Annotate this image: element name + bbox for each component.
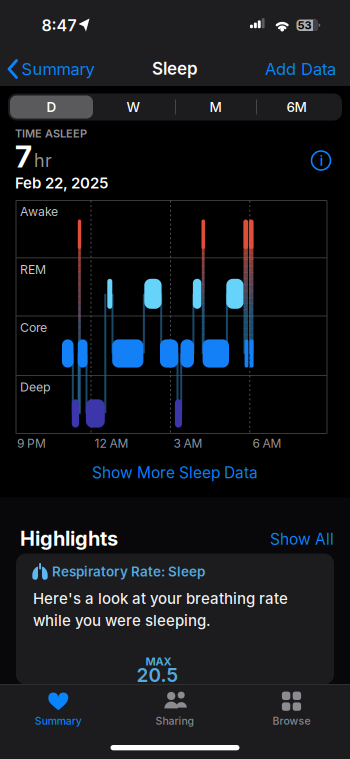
button[interactable]: Summary [13, 682, 103, 734]
staticText: 9 PM [17, 436, 46, 451]
staticText: Summary [35, 715, 82, 727]
button[interactable]: W [92, 93, 175, 120]
button[interactable]: Sharing [130, 682, 220, 734]
button[interactable]: 6M [255, 93, 338, 120]
staticText: MAX [145, 655, 171, 668]
button[interactable]: About Time Asleep [306, 145, 336, 175]
button[interactable]: Show More Sleep Data [65, 457, 285, 487]
staticText: REM [20, 262, 46, 277]
staticText: Here's a look at your breathing rate [33, 589, 288, 607]
staticText: Sleep [152, 58, 198, 79]
staticText: M [209, 99, 221, 115]
staticText: 53 [297, 19, 311, 32]
staticText: Sharing [155, 715, 194, 727]
staticText: TIME ASLEEP [15, 127, 87, 140]
staticText: 7 [15, 138, 32, 175]
staticText: 12 AM [94, 436, 128, 451]
staticText: Browse [272, 715, 310, 727]
staticText: Show All [270, 530, 334, 548]
staticText: Summary [21, 59, 94, 79]
staticText: Show More Sleep Data [92, 463, 258, 482]
staticText: Add Data [265, 59, 336, 79]
button[interactable]: Add Data [256, 47, 336, 91]
staticText: D [46, 99, 56, 115]
staticText: Awake [20, 204, 58, 219]
button[interactable]: Respiratory Rate: Sleep highlight [16, 553, 334, 684]
staticText: W [126, 99, 140, 115]
button[interactable]: Browse [246, 682, 336, 734]
staticText: Feb 22, 2025 [15, 174, 108, 192]
staticText: i [320, 153, 323, 169]
staticText: Highlights [20, 526, 118, 551]
staticText: Core [20, 320, 47, 335]
button[interactable]: D [10, 93, 93, 120]
staticText: hr [34, 150, 52, 171]
staticText: Deep [20, 380, 51, 394]
staticText: Respiratory Rate: Sleep [52, 563, 205, 580]
staticText: 6M [286, 99, 306, 115]
button[interactable]: M [174, 93, 257, 120]
button[interactable]: Show All [254, 530, 334, 548]
staticText: 6 AM [252, 436, 281, 451]
staticText: 20.5 [136, 663, 178, 686]
staticText: while you were sleeping. [33, 611, 211, 629]
staticText: 3 AM [173, 436, 202, 451]
staticText: 8:47 [41, 16, 76, 35]
button[interactable]: Summary [0, 47, 110, 91]
